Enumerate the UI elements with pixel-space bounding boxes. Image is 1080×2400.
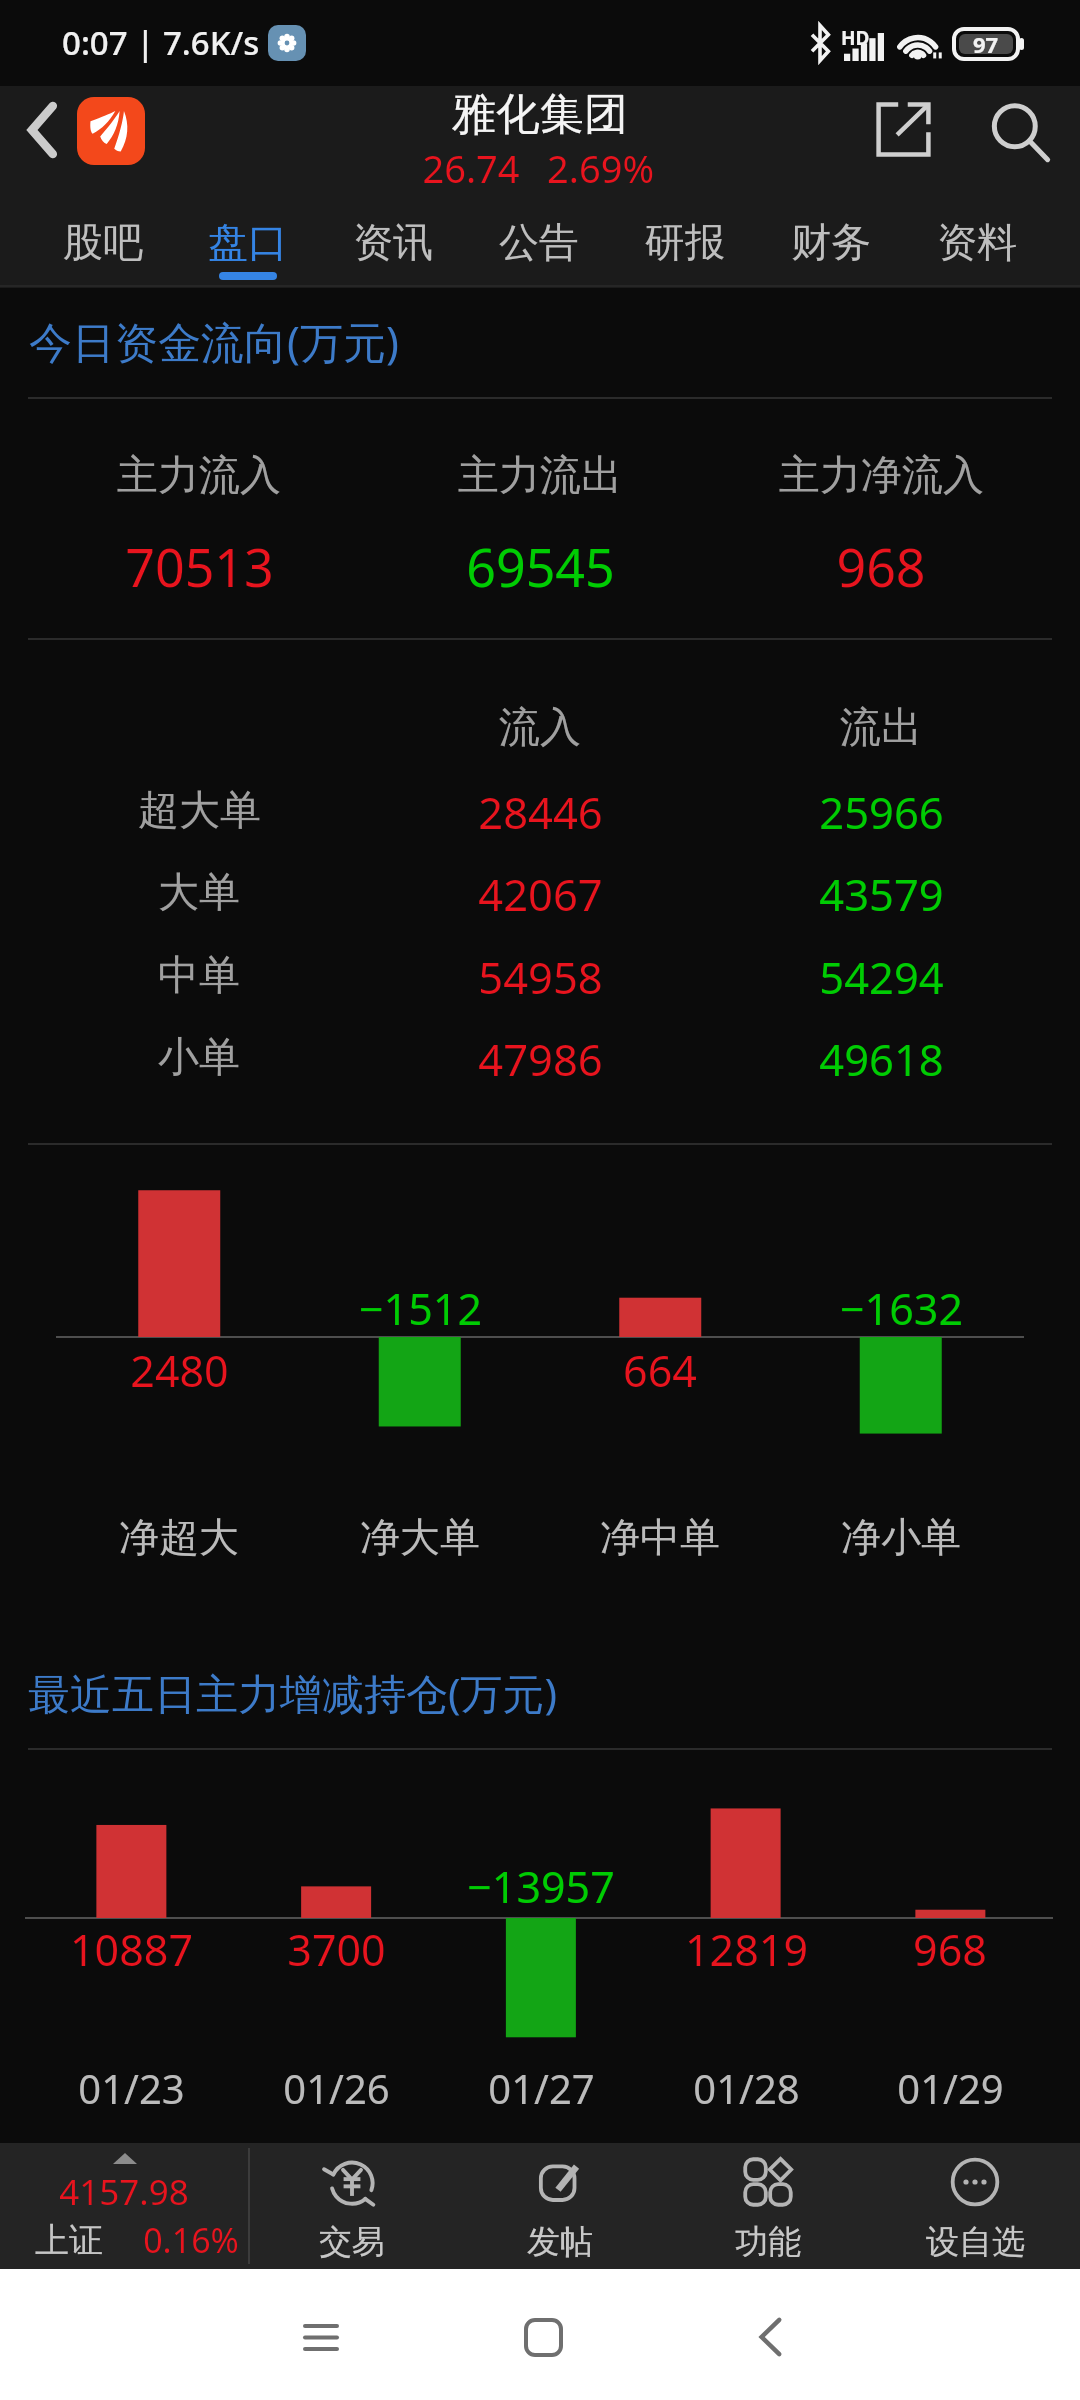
staticText: 超大单	[138, 785, 261, 837]
staticText: 主力净流入	[779, 450, 984, 502]
staticText: 主力流出	[458, 450, 622, 502]
staticText: 01/28	[693, 2061, 800, 2115]
button[interactable]: Back	[728, 2295, 812, 2379]
staticText: 净超大	[119, 1512, 239, 1562]
staticText: 28446	[478, 782, 603, 841]
staticText: 01/27	[488, 2061, 595, 2115]
staticText: 大单	[158, 867, 240, 919]
button[interactable]: Back	[9, 97, 75, 163]
button[interactable]: 股吧	[30, 192, 175, 288]
button[interactable]: Share	[868, 94, 938, 164]
staticText: 股吧	[63, 217, 143, 267]
staticText: 54294	[819, 947, 944, 1006]
button[interactable]: 4157.98	[0, 2143, 249, 2269]
staticText: 968	[913, 1920, 987, 1979]
staticText: 26.74	[422, 142, 520, 194]
button[interactable]: Recent apps	[279, 2295, 363, 2379]
staticText: 49618	[819, 1029, 944, 1088]
staticText: 中单	[158, 950, 240, 1002]
staticText: −13957	[467, 1857, 615, 1916]
staticText: 47986	[478, 1029, 603, 1088]
button[interactable]: 盘口	[175, 192, 320, 288]
staticText: 2480	[130, 1341, 229, 1400]
staticText: 小单	[158, 1032, 240, 1084]
staticText: HD	[841, 25, 870, 51]
staticText: 净中单	[600, 1512, 720, 1562]
button[interactable]: 交易	[248, 2143, 456, 2269]
staticText: 盘口	[208, 217, 288, 267]
staticText: 最近五日主力增减持仓(万元)	[28, 1664, 558, 1721]
staticText: 资讯	[353, 217, 433, 267]
staticText: 25966	[819, 782, 944, 841]
staticText: 今日资金流向(万元)	[29, 312, 399, 371]
staticText: 10887	[70, 1920, 193, 1979]
button[interactable]: 公告	[466, 192, 612, 288]
staticText: 01/26	[283, 2061, 390, 2115]
staticText: 54958	[478, 947, 603, 1006]
staticText: 70513	[125, 531, 274, 602]
staticText: 功能	[735, 2221, 801, 2263]
staticText: 0.16%	[143, 2217, 239, 2263]
staticText: 设自选	[926, 2221, 1025, 2263]
staticText: 雅化集团	[452, 87, 628, 142]
button[interactable]: 发帖	[456, 2143, 664, 2269]
staticText: 69545	[466, 531, 615, 602]
staticText: 97	[973, 29, 999, 59]
staticText: 净小单	[841, 1512, 961, 1562]
button[interactable]: 资讯	[320, 192, 466, 288]
staticText: 43579	[819, 864, 944, 923]
button[interactable]: 设自选	[871, 2143, 1079, 2269]
staticText: 发帖	[527, 2221, 593, 2263]
staticText: 交易	[319, 2221, 385, 2263]
staticText: 财务	[791, 217, 871, 267]
staticText: 净大单	[360, 1512, 480, 1562]
button[interactable]: 财务	[758, 192, 904, 288]
staticText: 968	[836, 531, 926, 602]
button[interactable]: 研报	[612, 192, 758, 288]
staticText: 664	[623, 1341, 697, 1400]
staticText: 3700	[287, 1920, 386, 1979]
staticText: 4157.98	[59, 2168, 189, 2216]
staticText: 流出	[840, 702, 922, 754]
button[interactable]: 资料	[904, 192, 1050, 288]
staticText: 0:07 | 7.6K/s	[62, 20, 260, 65]
staticText: 42067	[478, 864, 603, 923]
staticText: 流入	[499, 702, 581, 754]
button[interactable]: App home	[77, 97, 145, 165]
staticText: 研报	[645, 217, 725, 267]
staticText: 01/29	[897, 2061, 1004, 2115]
button[interactable]: Home	[501, 2295, 585, 2379]
staticText: 2.69%	[547, 142, 654, 194]
staticText: 上证	[35, 2219, 103, 2262]
button[interactable]: Search	[983, 95, 1059, 171]
staticText: 公告	[499, 217, 579, 267]
button[interactable]: 功能	[664, 2143, 872, 2269]
staticText: 12819	[685, 1920, 808, 1979]
staticText: 01/23	[78, 2061, 185, 2115]
staticText: 资料	[937, 217, 1017, 267]
staticText: −1512	[359, 1279, 482, 1338]
staticText: 主力流入	[117, 450, 281, 502]
staticText: −1632	[840, 1279, 963, 1338]
